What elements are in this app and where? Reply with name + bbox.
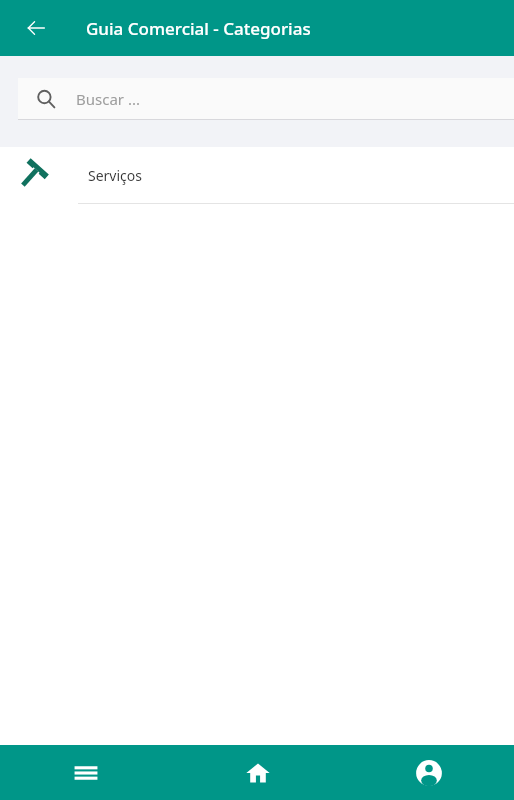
- button[interactable]: Serviços: [0, 147, 514, 203]
- staticText: Guia Comercial - Categorias: [86, 17, 311, 40]
- staticText: Serviços: [88, 166, 142, 185]
- button[interactable]: Back: [16, 8, 56, 48]
- button[interactable]: Menu: [0, 745, 172, 800]
- button[interactable]: Buscar ...: [18, 78, 514, 120]
- staticText: Buscar ...: [76, 89, 140, 109]
- button[interactable]: Home: [172, 745, 343, 800]
- button[interactable]: Account: [343, 745, 514, 800]
